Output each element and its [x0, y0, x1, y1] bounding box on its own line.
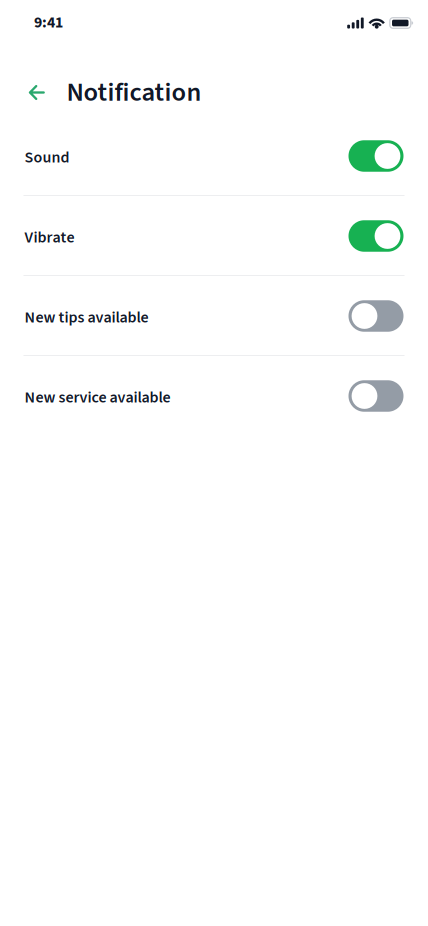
button[interactable]: New tips available: [0, 276, 428, 356]
staticText: Sound: [24, 146, 69, 169]
staticText: New tips available: [24, 306, 148, 329]
staticText: Notification: [66, 74, 201, 111]
button[interactable]: Back: [21, 74, 51, 110]
button[interactable]: Vibrate: [0, 196, 428, 276]
button[interactable]: Sound: [0, 116, 428, 196]
staticText: 9:41: [34, 11, 63, 34]
staticText: New service available: [24, 386, 170, 409]
button[interactable]: New service available: [0, 356, 428, 436]
staticText: Vibrate: [24, 226, 74, 249]
